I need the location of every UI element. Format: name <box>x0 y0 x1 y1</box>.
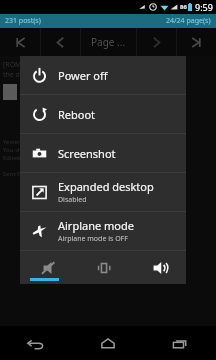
staticText: the device — discussion thread <box>3 70 105 80</box>
staticText: [ROM][4.4.2] CyanogenMod 11 nightly for <box>3 60 140 70</box>
staticText: Quoted text line sample here <box>20 92 102 100</box>
staticText: 9:59 <box>195 1 213 13</box>
staticText: Power off <box>58 68 108 83</box>
button[interactable]: Reboot <box>20 95 186 133</box>
button[interactable]: Previous page <box>41 28 80 56</box>
staticText: Screenshot <box>58 146 116 161</box>
staticText: Edited by moderator on the forum <box>3 154 100 162</box>
button[interactable]: Power off <box>20 56 186 94</box>
staticText: Expanded desktop <box>58 179 154 194</box>
button[interactable]: Airplane mode <box>20 212 186 250</box>
button[interactable]: Silent mode <box>20 251 76 284</box>
button[interactable]: Back <box>0 326 72 360</box>
staticText: 24/24 page(s) <box>166 16 211 26</box>
button[interactable]: Screenshot <box>20 134 186 172</box>
staticText: 231 post(s) <box>5 16 41 26</box>
button[interactable]: Recent apps <box>144 326 216 360</box>
button[interactable]: Last page <box>177 28 216 56</box>
button[interactable]: Next page <box>137 28 176 56</box>
staticText: Sent from my phone using Tapatalk <box>3 170 103 178</box>
staticText: Disabled <box>58 195 87 205</box>
staticText: You should flash gapps after it <box>3 146 89 154</box>
staticText: Page ... <box>91 35 126 49</box>
button[interactable]: Sound on <box>131 251 186 284</box>
button[interactable]: Page ... <box>81 28 136 56</box>
button[interactable]: First page <box>0 28 40 56</box>
staticText: Quoted text line sample here <box>20 108 102 116</box>
staticText: Airplane mode is OFF <box>58 234 128 244</box>
staticText: Yesterday the update landed finally <box>3 138 103 146</box>
staticText: Airplane mode <box>58 218 134 233</box>
button[interactable]: Vibrate mode <box>76 251 131 284</box>
button[interactable]: Expanded desktop <box>20 173 186 211</box>
staticText: Reboot <box>58 107 96 122</box>
button[interactable]: Home <box>72 326 144 360</box>
staticText: 86 <box>180 3 187 11</box>
